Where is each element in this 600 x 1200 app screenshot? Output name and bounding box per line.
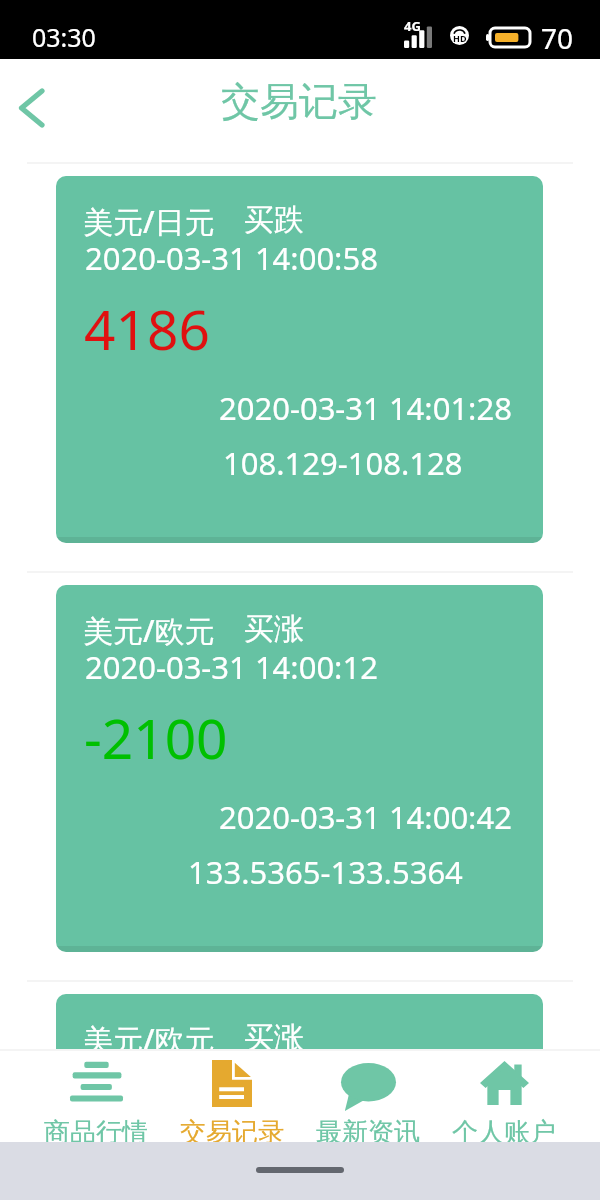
staticText: 最新资讯	[316, 1116, 420, 1149]
staticText: 2020-03-31 14:00:12	[85, 646, 378, 688]
staticText: 商品行情	[44, 1116, 148, 1149]
staticText: 交易记录	[180, 1116, 284, 1149]
staticText: 70	[541, 19, 574, 57]
staticText: 4186	[84, 291, 210, 366]
button[interactable]: Back	[0, 77, 62, 139]
staticText: HD	[453, 32, 467, 44]
staticText: 2020-03-31 14:00:12	[85, 1055, 378, 1097]
staticText: -2100	[84, 1109, 228, 1184]
staticText: 买涨	[244, 610, 304, 648]
button[interactable]: 美元/日元	[56, 176, 543, 543]
staticText: 美元/欧元	[83, 610, 215, 651]
staticText: 美元/欧元	[83, 1019, 215, 1060]
staticText: 交易记录	[221, 77, 377, 126]
staticText: 133.5365-133.5364	[188, 851, 463, 893]
staticText: 108.129-108.128	[223, 442, 463, 484]
button[interactable]: 美元/欧元	[56, 994, 543, 1200]
button[interactable]: 个人账户	[436, 1049, 572, 1142]
staticText: 2020-03-31 14:00:58	[85, 237, 378, 279]
staticText: 买涨	[244, 1019, 304, 1057]
staticText: 美元/日元	[83, 201, 215, 242]
staticText: -2100	[84, 700, 228, 775]
staticText: 2020-03-31 14:01:28	[219, 387, 512, 429]
button[interactable]: 商品行情	[28, 1049, 164, 1142]
staticText: 4G	[404, 17, 421, 35]
staticText: 03:30	[32, 20, 96, 54]
button[interactable]: 最新资讯	[300, 1049, 436, 1142]
button[interactable]: 美元/欧元	[56, 585, 543, 952]
button[interactable]: 交易记录	[164, 1049, 300, 1142]
staticText: 2020-03-31 14:00:42	[219, 796, 512, 838]
staticText: 个人账户	[452, 1116, 556, 1149]
staticText: 买跌	[244, 201, 304, 239]
